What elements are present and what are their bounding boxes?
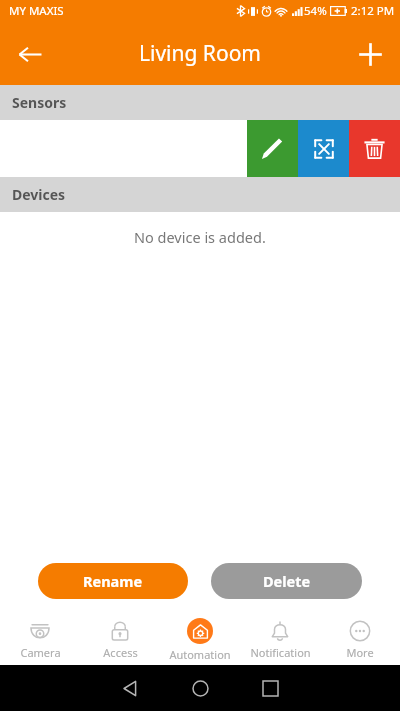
staticText: More — [346, 645, 374, 660]
button[interactable]: Delete sensor — [349, 120, 400, 177]
staticText: Rename — [83, 571, 143, 591]
staticText: Sensors — [12, 93, 67, 112]
button[interactable]: Add — [346, 30, 394, 78]
button[interactable]: Back — [6, 30, 54, 78]
button[interactable]: Expand — [298, 120, 349, 177]
staticText: No device is added. — [134, 227, 266, 247]
staticText: Delete — [263, 571, 311, 591]
staticText: 54% — [304, 3, 327, 19]
button[interactable]: More — [320, 612, 400, 665]
button[interactable]: Edit — [247, 120, 298, 177]
button[interactable]: Rename — [38, 563, 188, 599]
button[interactable]: Automation — [160, 612, 240, 665]
button[interactable]: Camera — [0, 612, 80, 665]
staticText: Access — [103, 645, 138, 660]
button[interactable]: Back — [95, 665, 165, 711]
button[interactable]: Notification — [240, 612, 320, 665]
button[interactable]: Recent apps — [235, 665, 305, 711]
staticText: Notification — [250, 645, 311, 660]
staticText: Devices — [12, 185, 66, 204]
button[interactable]: Home — [165, 665, 235, 711]
button[interactable]: Delete — [211, 563, 362, 599]
staticText: Camera — [20, 645, 61, 660]
button[interactable]: Access — [80, 612, 160, 665]
staticText: MY MAXIS — [9, 3, 64, 19]
staticText: Automation — [169, 647, 231, 662]
staticText: 2:12 PM — [351, 3, 395, 19]
staticText: Living Room — [139, 39, 261, 68]
